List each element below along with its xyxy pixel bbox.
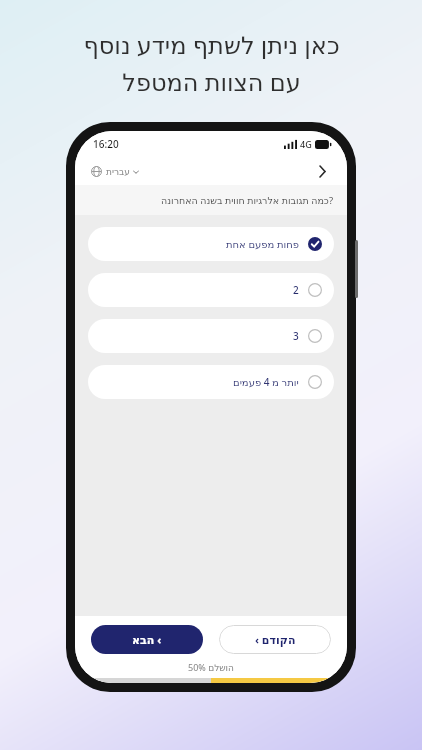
staticText: ‹ הקודם [255,632,296,647]
staticText: 16:20 [93,137,119,151]
staticText: הבא ‹ [132,632,162,647]
staticText: 50% הושלם [75,661,347,673]
staticText: כאן ניתן לשתף מידע נוסף [83,28,340,61]
staticText: עברית [106,167,130,177]
staticText: פחות מפעם אחת [226,237,299,251]
button[interactable]: עברית [89,164,141,179]
staticText: עם הצוות המטפל [122,65,301,98]
button[interactable]: Close [311,160,333,182]
staticText: 4G [300,138,312,150]
button[interactable]: יותר מ 4 פעמים [88,365,334,399]
button[interactable]: 3 [88,319,334,353]
button[interactable]: הבא ‹ [91,625,203,654]
staticText: 2 [293,283,299,297]
button[interactable]: 2 [88,273,334,307]
button[interactable]: ‹ הקודם [219,625,331,654]
staticText: 3 [293,329,299,343]
button[interactable]: פחות מפעם אחת [88,227,334,261]
staticText: יותר מ 4 פעמים [233,375,299,389]
staticText: כמה תגובות אלרגיות חווית בשנה האחרונה? [161,194,333,207]
